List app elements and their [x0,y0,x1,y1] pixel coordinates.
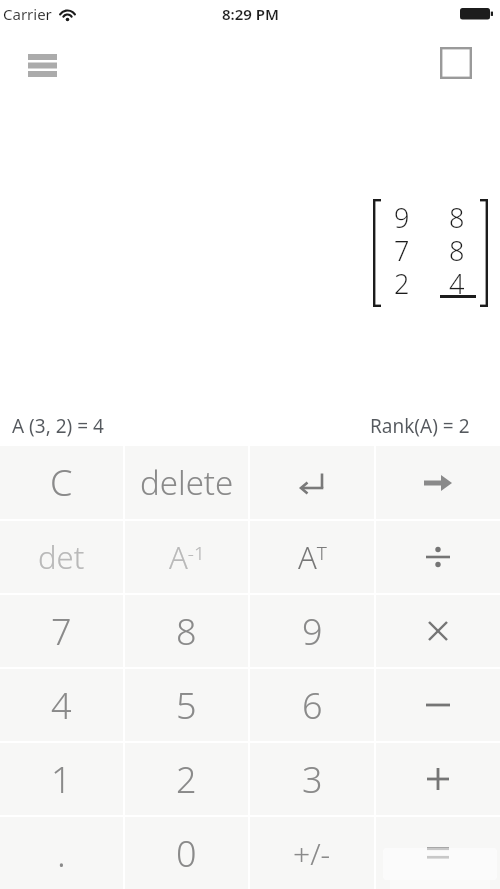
staticText: 2 [176,755,197,804]
button[interactable] [376,595,500,667]
staticText: 1 [51,755,72,804]
staticText: A (3, 2) = 4 [12,413,104,439]
staticText: 7 [51,607,72,656]
button[interactable]: 3 [250,743,374,815]
staticText: 4 [449,265,465,299]
staticText: det [38,536,85,578]
staticText: Carrier [3,4,52,24]
staticText: 9 [394,199,410,233]
button[interactable] [440,47,472,79]
staticText: 3 [302,755,323,804]
button[interactable]: 9 [250,595,374,667]
staticText: 8:29 PM [222,4,279,24]
button[interactable]: +/- [250,817,374,889]
staticText: AT [298,536,327,578]
staticText: 5 [176,681,197,730]
staticText: 8 [176,607,197,656]
button[interactable]: 1 [0,743,123,815]
button[interactable]: C [0,446,123,519]
button[interactable]: 7 [0,595,123,667]
staticText: +/- [293,833,331,874]
staticText: C [50,458,73,507]
staticText: 7 [394,232,410,266]
staticText: 4 [51,681,72,730]
button[interactable] [376,817,500,889]
button[interactable]: 6 [250,669,374,741]
button[interactable]: det [0,521,123,593]
staticText: 2 [394,265,410,299]
staticText: 9 [302,607,323,656]
button[interactable]: 4 [0,669,123,741]
button[interactable]: 8 [125,595,248,667]
staticText: Rank(A) = 2 [370,413,470,439]
staticText: . [57,829,66,878]
staticText: 0 [176,829,197,878]
button[interactable]: . [0,817,123,889]
staticText: 6 [302,681,323,730]
staticText: delete [140,460,234,505]
staticText: 8 [449,232,465,266]
button[interactable]: 5 [125,669,248,741]
button[interactable] [376,446,500,519]
button[interactable] [250,446,374,519]
staticText: A-1 [169,536,205,578]
button[interactable] [376,669,500,741]
button[interactable]: 2 [125,743,248,815]
button[interactable]: delete [125,446,248,519]
button[interactable] [28,52,58,78]
button[interactable]: AT [250,521,374,593]
button[interactable] [376,743,500,815]
button[interactable]: 0 [125,817,248,889]
staticText: 8 [449,199,465,233]
button[interactable] [376,521,500,593]
button[interactable]: A-1 [125,521,248,593]
